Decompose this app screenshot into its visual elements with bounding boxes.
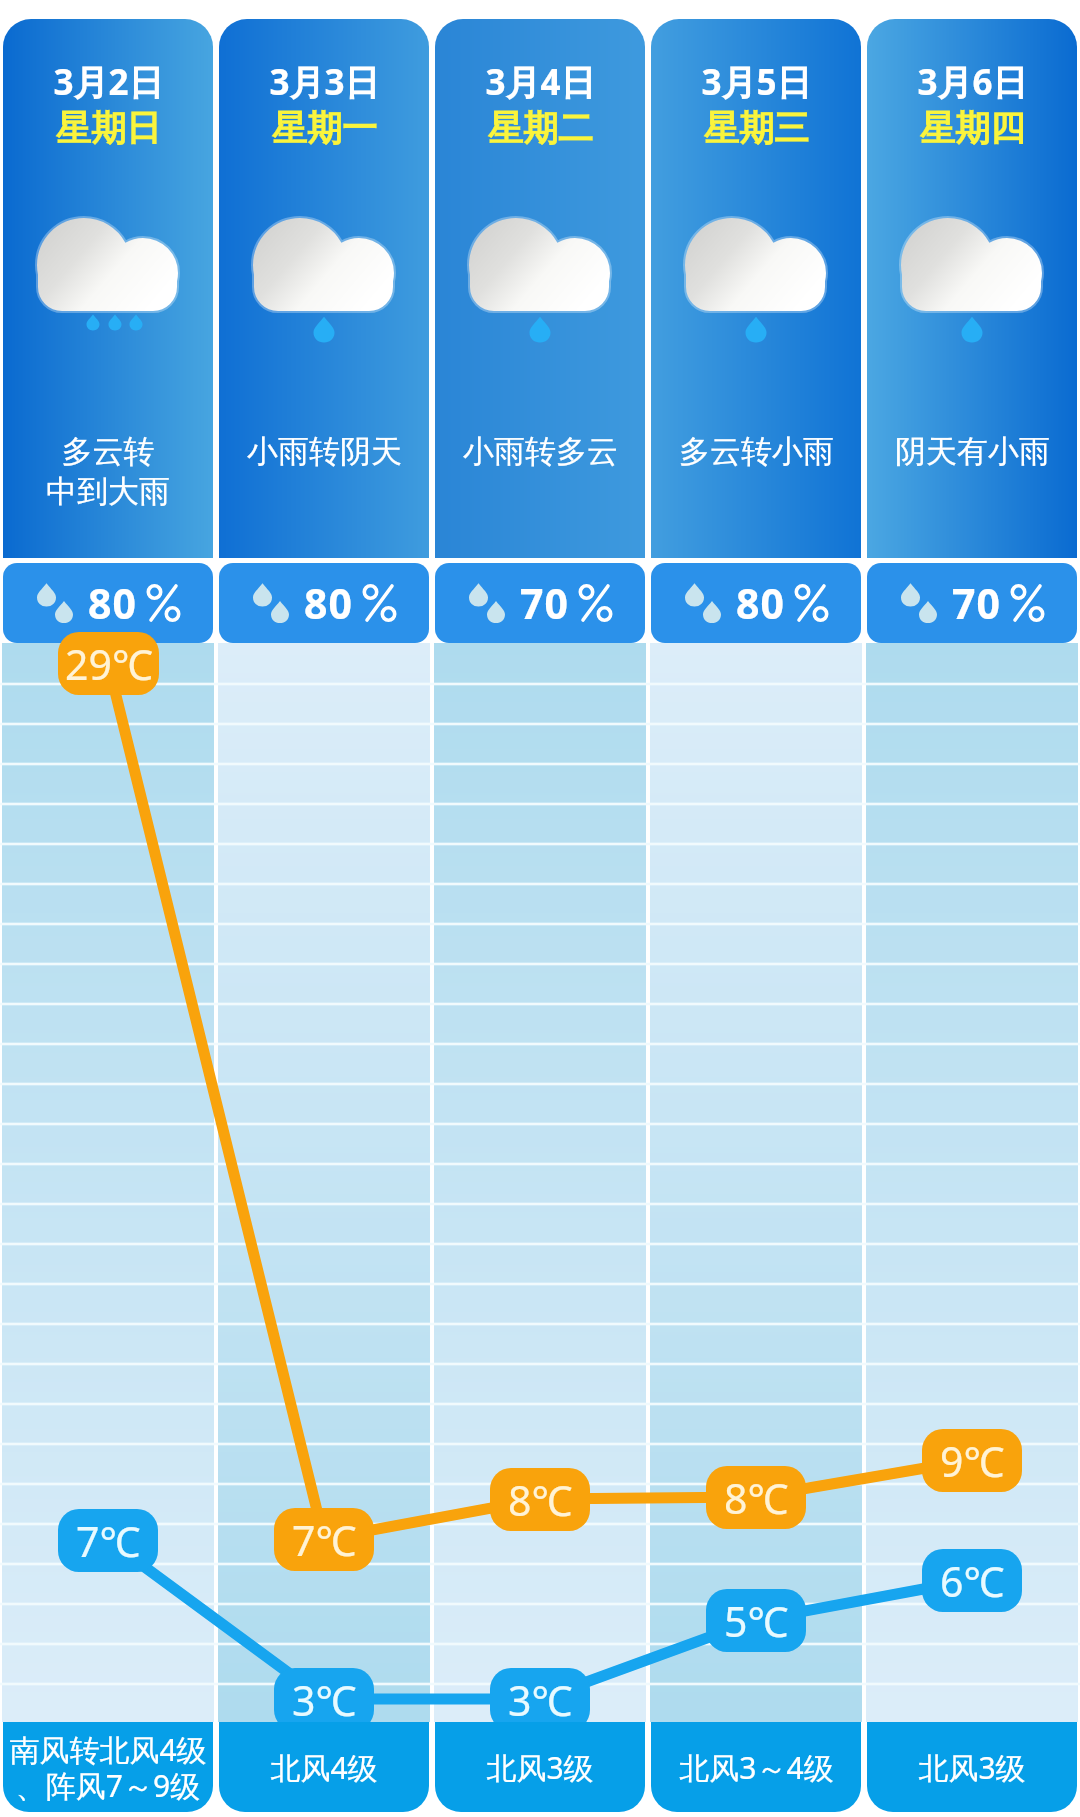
- button[interactable]: 北风3级: [867, 1722, 1077, 1812]
- button[interactable]: 3月5日: [651, 19, 861, 558]
- staticText: 80: [304, 575, 353, 631]
- button[interactable]: 80: [219, 563, 429, 643]
- staticText: 3月5日: [701, 58, 812, 106]
- staticText: 小雨转多云: [463, 432, 618, 471]
- staticText: 9℃: [940, 1433, 1005, 1489]
- button[interactable]: 北风3级: [435, 1722, 645, 1812]
- button[interactable]: 北风4级: [219, 1722, 429, 1812]
- staticText: 80: [88, 575, 137, 631]
- button[interactable]: 南风转北风4级 、阵风7～9级: [3, 1722, 213, 1812]
- staticText: 3月3日: [269, 58, 380, 106]
- button[interactable]: 3月3日: [219, 19, 429, 558]
- staticText: 星期四: [920, 106, 1025, 150]
- staticText: 80: [736, 575, 785, 631]
- staticText: 70: [520, 575, 569, 631]
- button[interactable]: 3月4日: [435, 19, 645, 558]
- staticText: 北风4级: [270, 1747, 378, 1788]
- staticText: 3月6日: [917, 58, 1028, 106]
- staticText: 星期一: [272, 106, 377, 150]
- button[interactable]: 80: [651, 563, 861, 643]
- staticText: 星期日: [56, 106, 161, 150]
- staticText: 北风3级: [918, 1747, 1026, 1788]
- staticText: 29℃: [65, 636, 153, 692]
- staticText: 5℃: [724, 1593, 789, 1649]
- staticText: 7℃: [76, 1513, 141, 1569]
- staticText: 南风转北风4级 、阵风7～9级: [9, 1729, 207, 1806]
- staticText: 8℃: [508, 1472, 573, 1528]
- button[interactable]: 5℃: [706, 1589, 806, 1652]
- button[interactable]: 7℃: [58, 1509, 158, 1572]
- button[interactable]: 3月6日: [867, 19, 1077, 558]
- staticText: 8℃: [724, 1470, 789, 1526]
- button[interactable]: 29℃: [58, 632, 159, 695]
- staticText: 多云转小雨: [679, 432, 834, 471]
- staticText: 阴天有小雨: [895, 432, 1050, 471]
- staticText: 6℃: [940, 1553, 1005, 1609]
- staticText: 3月2日: [53, 58, 164, 106]
- staticText: 7℃: [292, 1512, 357, 1568]
- button[interactable]: 6℃: [922, 1549, 1022, 1612]
- button[interactable]: 70: [435, 563, 645, 643]
- button[interactable]: 80: [3, 563, 213, 643]
- staticText: 3月4日: [485, 58, 596, 106]
- button[interactable]: 3月2日: [3, 19, 213, 558]
- button[interactable]: 北风3～4级: [651, 1722, 861, 1812]
- button[interactable]: 3℃: [490, 1668, 590, 1731]
- button[interactable]: 70: [867, 563, 1077, 643]
- staticText: 3℃: [292, 1672, 357, 1728]
- staticText: 小雨转阴天: [247, 432, 402, 471]
- button[interactable]: 8℃: [490, 1468, 590, 1531]
- staticText: 星期三: [704, 106, 809, 150]
- button[interactable]: 7℃: [274, 1508, 374, 1571]
- staticText: 70: [952, 575, 1001, 631]
- staticText: 北风3级: [486, 1747, 594, 1788]
- staticText: 北风3～4级: [679, 1747, 834, 1788]
- staticText: 多云转 中到大雨: [46, 432, 170, 511]
- button[interactable]: 9℃: [922, 1429, 1022, 1492]
- button[interactable]: 8℃: [706, 1466, 806, 1529]
- button[interactable]: 3℃: [274, 1668, 374, 1731]
- staticText: 星期二: [488, 106, 593, 150]
- staticText: 3℃: [508, 1672, 573, 1728]
